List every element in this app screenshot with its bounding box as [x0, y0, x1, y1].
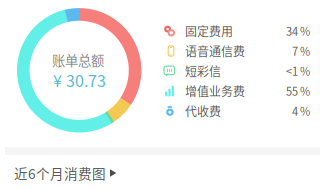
staticText: 账单总额 — [52, 50, 104, 70]
button[interactable]: 近6个月消费图 — [0, 156, 320, 190]
staticText: 固定费用 — [185, 22, 233, 40]
button[interactable]: 固定费用 — [164, 21, 310, 41]
button[interactable]: 语音通信费 — [164, 41, 310, 61]
staticText: 4 % — [292, 103, 310, 119]
button[interactable]: 短彩信 — [164, 61, 310, 81]
staticText: 34 % — [286, 23, 310, 39]
staticText: 增值业务费 — [185, 82, 245, 100]
button[interactable]: 增值业务费 — [164, 81, 310, 101]
staticText: 7 % — [292, 43, 310, 59]
staticText: 代收费 — [185, 102, 221, 120]
staticText: ¥ 30.73 — [53, 68, 106, 92]
staticText: 短彩信 — [185, 62, 221, 80]
staticText: <1 % — [286, 63, 310, 79]
staticText: 近6个月消费图 — [14, 163, 106, 183]
staticText: 语音通信费 — [185, 42, 245, 60]
staticText: 55 % — [286, 83, 310, 99]
button[interactable]: 代收费 — [164, 101, 310, 121]
